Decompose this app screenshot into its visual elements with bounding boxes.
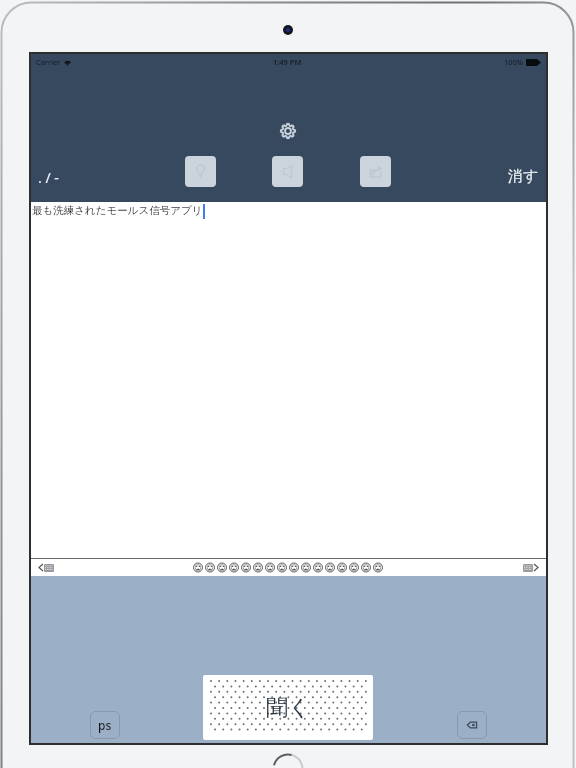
- button[interactable]: Settings: [278, 121, 298, 141]
- staticText: . / -: [38, 168, 59, 187]
- button[interactable]: Share: [360, 156, 391, 187]
- button[interactable]: 聞く: [203, 675, 373, 740]
- button[interactable]: Sound: [272, 156, 303, 187]
- staticText: 聞く: [266, 694, 311, 722]
- button[interactable]: . / -: [35, 164, 62, 191]
- staticText: 消す: [508, 167, 539, 186]
- staticText: 1:49 PM: [273, 57, 302, 67]
- staticText: 100%: [504, 57, 524, 67]
- staticText: ps: [98, 717, 112, 733]
- staticText: 最も洗練されたモールス信号アプリ: [32, 204, 203, 217]
- button[interactable]: ps: [90, 711, 120, 739]
- button[interactable]: Backspace: [457, 711, 487, 739]
- staticText: Carrier: [36, 57, 61, 67]
- button[interactable]: 消す: [505, 159, 542, 194]
- button[interactable]: Flash light: [185, 156, 216, 187]
